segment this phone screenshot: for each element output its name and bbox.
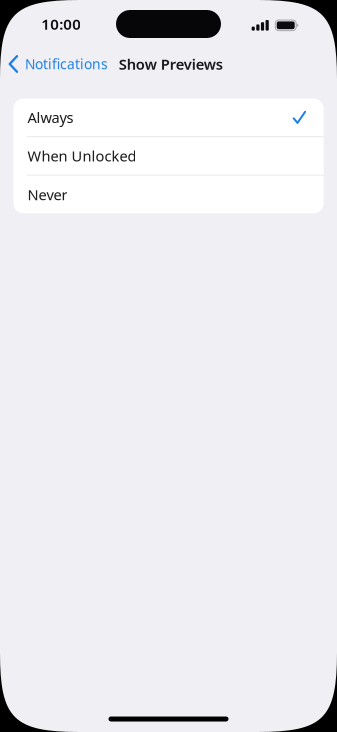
staticText: When Unlocked [27, 146, 136, 166]
staticText: Show Previews [119, 54, 223, 74]
button[interactable]: When Unlocked [13, 137, 324, 175]
button[interactable]: Always [13, 98, 324, 136]
staticText: 10:00 [41, 14, 81, 34]
staticText: Notifications [25, 55, 108, 73]
button[interactable]: Notifications [0, 48, 114, 80]
staticText: Always [27, 107, 73, 127]
staticText: Never [27, 185, 67, 204]
button[interactable]: Never [13, 176, 324, 213]
